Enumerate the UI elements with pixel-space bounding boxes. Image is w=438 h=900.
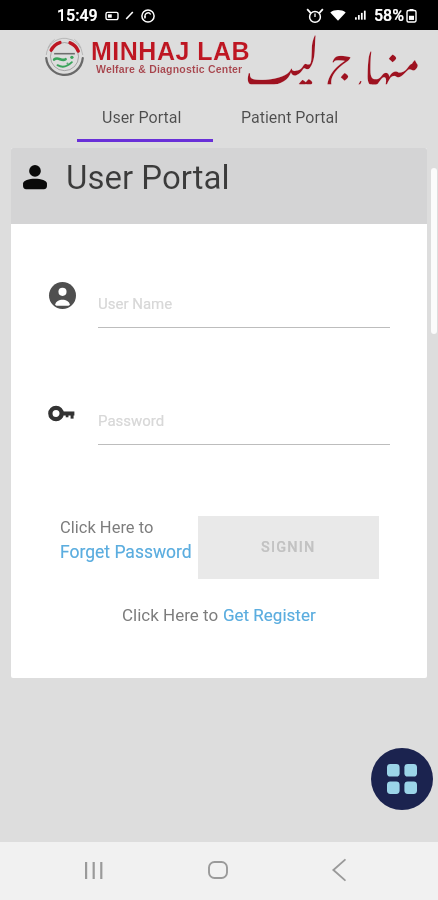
button[interactable]: Get Register xyxy=(223,605,316,625)
button[interactable]: User Portal xyxy=(68,92,216,144)
staticText: Password xyxy=(98,412,165,430)
staticText: 58% xyxy=(374,6,404,25)
staticText: منہاج لیب xyxy=(245,6,421,84)
button[interactable]: Back xyxy=(301,846,377,894)
staticText: Click Here to xyxy=(60,518,154,537)
button[interactable]: Patient Portal xyxy=(216,92,364,144)
staticText: User Name xyxy=(98,295,173,313)
staticText: Welfare & Diagnostic Center xyxy=(96,63,243,75)
staticText: Forget Password xyxy=(60,542,192,563)
staticText: User Portal xyxy=(102,108,182,127)
button[interactable]: Apps xyxy=(371,748,433,810)
staticText: MINHAJ LAB xyxy=(91,37,251,65)
staticText: Click Here to xyxy=(122,605,223,625)
staticText: User Portal xyxy=(66,158,230,197)
staticText: 15:49 xyxy=(57,6,98,25)
button[interactable]: SIGNIN xyxy=(198,516,379,579)
staticText: SIGNIN xyxy=(261,539,316,556)
staticText: Patient Portal xyxy=(241,108,339,127)
button[interactable]: Home xyxy=(180,846,256,894)
button[interactable]: Click Here to xyxy=(60,518,192,563)
button[interactable]: Recent apps xyxy=(56,846,132,894)
